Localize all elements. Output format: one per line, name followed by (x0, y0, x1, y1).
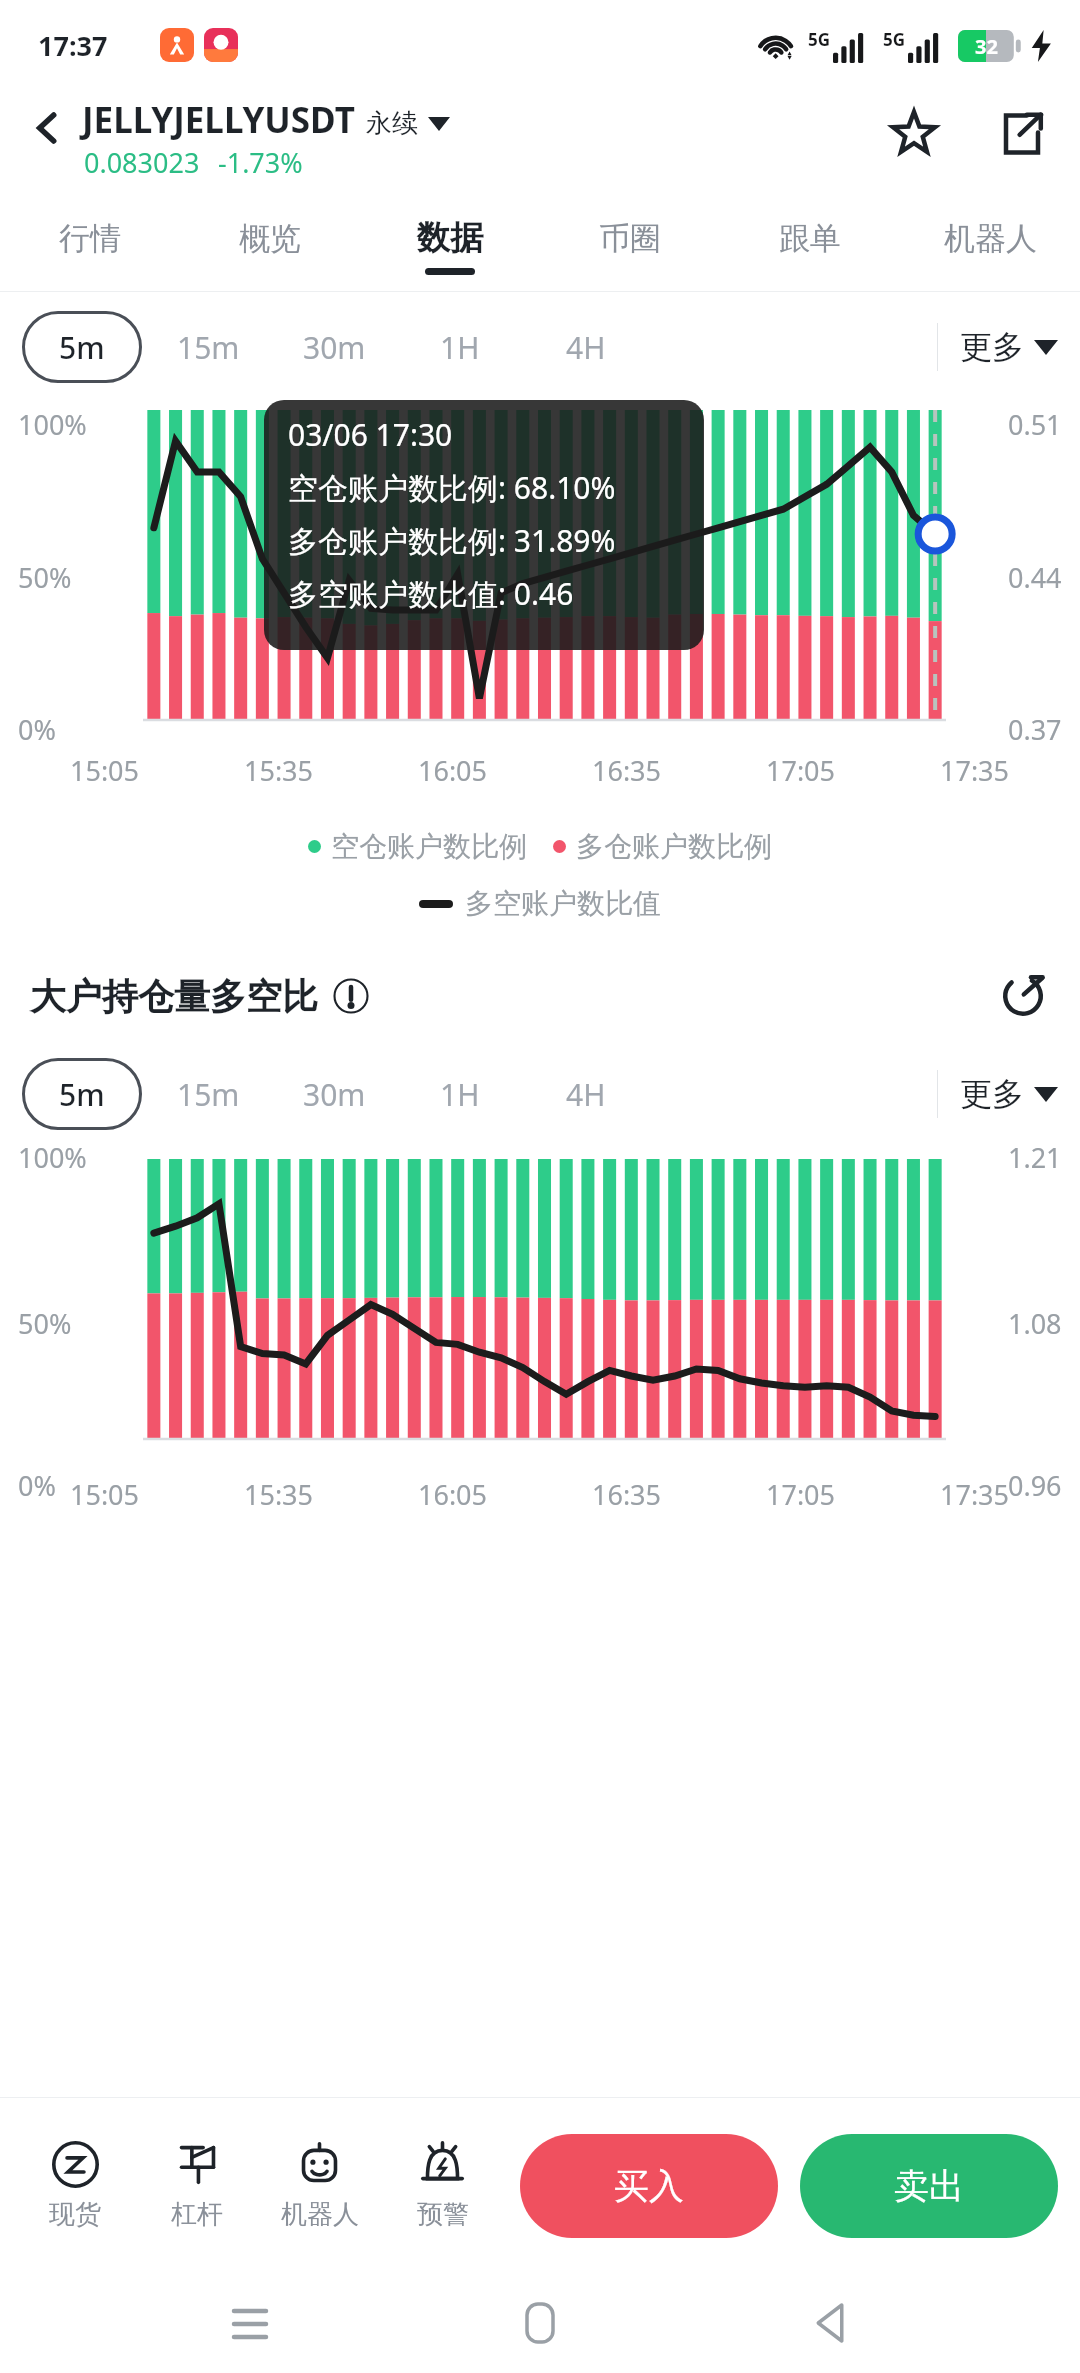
staticText: 5G (808, 28, 831, 51)
button[interactable]: Recents (210, 2283, 290, 2363)
staticText: 现货 (49, 2198, 101, 2231)
staticText: 概览 (239, 219, 301, 258)
staticText: 预警 (417, 2198, 469, 2231)
button[interactable]: 1H (400, 311, 520, 383)
staticText: 30m (303, 1074, 366, 1115)
button[interactable]: 数据 (360, 200, 540, 292)
button[interactable]: 5m (22, 311, 142, 383)
staticText: 100% (18, 406, 87, 443)
button[interactable]: JELLYJELLYUSDT (82, 96, 450, 144)
staticText: 50% (18, 1305, 72, 1342)
staticText: 0.44 (1008, 559, 1062, 596)
staticText: 卖出 (894, 2164, 964, 2208)
staticText: JELLYJELLYUSDT (82, 96, 355, 144)
button[interactable]: 预警 (381, 2098, 504, 2273)
staticText: 15m (177, 327, 240, 368)
button[interactable]: 15m (148, 311, 268, 383)
button[interactable]: 机器人 (258, 2098, 381, 2273)
staticText: 5m (59, 1074, 105, 1115)
staticText: 15m (177, 1074, 240, 1115)
staticText: 17:35 (940, 1476, 1010, 1513)
staticText: 17:05 (766, 1476, 836, 1513)
staticText: 数据 (417, 217, 483, 259)
button[interactable]: Share chart (992, 965, 1054, 1027)
staticText: 17:35 (940, 752, 1010, 789)
button[interactable]: 5m (22, 1058, 142, 1130)
button[interactable]: Info (332, 977, 370, 1015)
staticText: 16:35 (592, 752, 662, 789)
button[interactable]: 30m (274, 1058, 394, 1130)
staticText: 大户持仓量多空比 (30, 974, 318, 1019)
staticText: 机器人 (944, 219, 1037, 258)
button[interactable]: Back (18, 98, 78, 158)
staticText: 更多 (960, 1074, 1024, 1114)
staticText: 多仓账户数比例: 31.89% (288, 520, 616, 561)
staticText: -1.73% (218, 144, 303, 181)
staticText: 0.083023 (84, 144, 200, 181)
staticText: 30m (303, 327, 366, 368)
button[interactable]: 30m (274, 311, 394, 383)
staticText: 32 (975, 33, 998, 60)
button[interactable]: 4H (526, 1058, 646, 1130)
staticText: 4H (566, 1074, 606, 1115)
staticText: 1.08 (1008, 1305, 1062, 1342)
button[interactable]: 机器人 (900, 200, 1080, 292)
button[interactable]: Share (986, 98, 1058, 170)
staticText: 空仓账户数比例 (331, 829, 527, 864)
button[interactable]: 卖出 (800, 2134, 1058, 2238)
staticText: 15:05 (70, 1476, 140, 1513)
staticText: 0% (18, 711, 56, 748)
staticText: 1.21 (1008, 1139, 1062, 1176)
button[interactable]: 4H (526, 311, 646, 383)
staticText: 币圈 (599, 219, 661, 258)
button[interactable]: Home (500, 2283, 580, 2363)
staticText: 15:35 (244, 752, 314, 789)
button[interactable]: 15m (148, 1058, 268, 1130)
button[interactable]: Favorite (878, 98, 950, 170)
button[interactable]: 更多 (960, 1074, 1058, 1114)
staticText: 1H (440, 327, 480, 368)
button[interactable]: 跟单 (720, 200, 900, 292)
button[interactable]: 币圈 (540, 200, 720, 292)
staticText: 16:35 (592, 1476, 662, 1513)
staticText: 100% (18, 1139, 87, 1176)
staticText: 17:37 (38, 27, 108, 64)
staticText: 5G (883, 28, 906, 51)
button[interactable]: 概览 (180, 200, 360, 292)
button[interactable]: 杠杆 (136, 2098, 258, 2273)
staticText: 0.96 (1008, 1467, 1062, 1504)
staticText: 多空账户数比值 (465, 886, 661, 921)
staticText: 15:05 (70, 752, 140, 789)
staticText: 5m (59, 327, 105, 368)
button[interactable]: 1H (400, 1058, 520, 1130)
staticText: 更多 (960, 327, 1024, 367)
staticText: 行情 (59, 219, 121, 258)
staticText: 16:05 (418, 1476, 488, 1513)
staticText: 杠杆 (171, 2198, 223, 2231)
staticText: 17:05 (766, 752, 836, 789)
button[interactable]: 更多 (960, 327, 1058, 367)
staticText: 跟单 (779, 219, 841, 258)
staticText: 空仓账户数比例: 68.10% (288, 467, 616, 508)
staticText: 0.37 (1008, 711, 1062, 748)
staticText: 多空账户数比值: 0.46 (288, 573, 574, 614)
staticText: 多仓账户数比例 (576, 829, 772, 864)
staticText: 50% (18, 559, 72, 596)
staticText: 15:35 (244, 1476, 314, 1513)
button[interactable]: Back (790, 2283, 870, 2363)
staticText: 03/06 17:30 (288, 414, 453, 455)
staticText: 永续 (366, 107, 418, 140)
staticText: 机器人 (281, 2198, 359, 2231)
staticText: 1H (440, 1074, 480, 1115)
button[interactable]: 行情 (0, 200, 180, 292)
button[interactable]: 买入 (520, 2134, 778, 2238)
button[interactable]: 现货 (14, 2098, 136, 2273)
staticText: 4H (566, 327, 606, 368)
staticText: 买入 (614, 2164, 684, 2208)
staticText: 0% (18, 1467, 56, 1504)
staticText: 0.51 (1008, 406, 1062, 443)
staticText: 16:05 (418, 752, 488, 789)
